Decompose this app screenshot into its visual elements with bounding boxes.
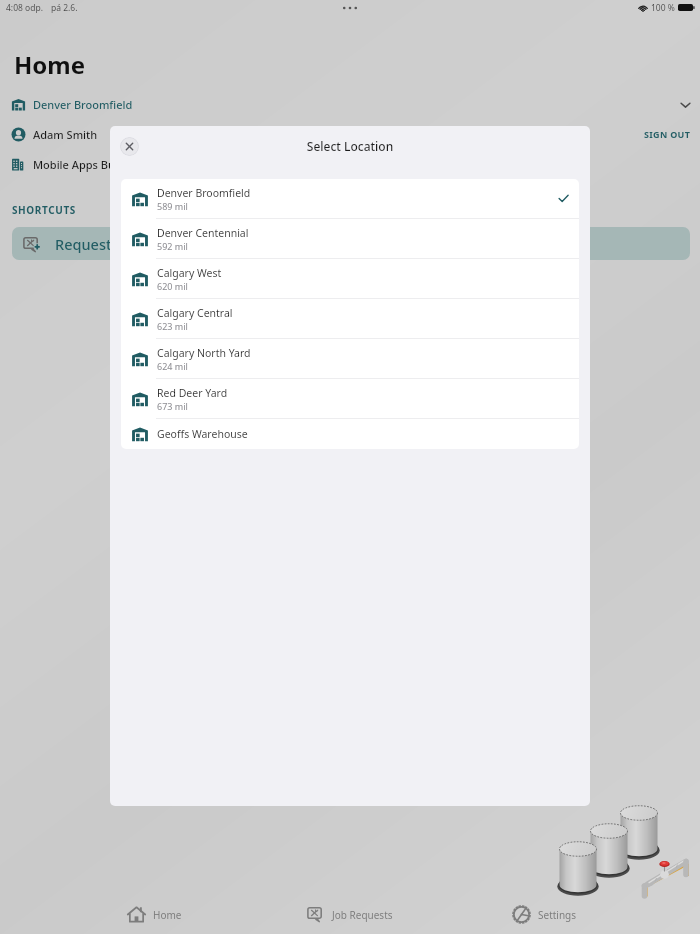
staticText: 623 mil — [157, 320, 188, 332]
staticText: Denver Broomfield — [157, 186, 251, 200]
staticText: 4:08 odp. — [6, 2, 43, 14]
staticText: Calgary West — [157, 266, 222, 280]
button[interactable]: Denver Broomfield — [11, 94, 691, 114]
staticText: Calgary North Yard — [157, 346, 251, 360]
button[interactable]: Home — [56, 894, 252, 934]
button[interactable]: Calgary West — [121, 259, 579, 299]
staticText: Denver Centennial — [157, 226, 249, 240]
button[interactable]: Red Deer Yard — [121, 379, 579, 419]
button[interactable]: Job Requests — [252, 894, 447, 934]
staticText: 592 mil — [157, 240, 188, 252]
staticText: 624 mil — [157, 360, 188, 372]
button[interactable]: Denver Broomfield — [121, 179, 579, 219]
staticText: Select Location — [110, 138, 590, 154]
staticText: Request — [55, 234, 112, 254]
staticText: 673 mil — [157, 400, 188, 412]
staticText: Calgary Central — [157, 306, 233, 320]
staticText: Home — [153, 908, 182, 922]
button[interactable]: Geoffs Warehouse — [121, 419, 579, 449]
staticText: SHORTCUTS — [12, 203, 76, 217]
button[interactable]: Calgary North Yard — [121, 339, 579, 379]
staticText: Denver Broomfield — [33, 97, 133, 112]
button[interactable]: SIGN OUT — [643, 126, 692, 142]
staticText: SIGN OUT — [644, 128, 691, 140]
staticText: Mobile Apps Buy — [33, 157, 121, 172]
staticText: 620 mil — [157, 280, 188, 292]
staticText: pá 2.6. — [51, 2, 78, 14]
staticText: Red Deer Yard — [157, 386, 228, 400]
staticText: Home — [14, 48, 86, 81]
button[interactable]: Request — [12, 227, 690, 260]
staticText: Settings — [538, 908, 577, 922]
button[interactable]: Denver Centennial — [121, 219, 579, 259]
staticText: Geoffs Warehouse — [157, 427, 248, 441]
button[interactable]: Settings — [447, 894, 642, 934]
staticText: 589 mil — [157, 200, 188, 212]
button[interactable]: Calgary Central — [121, 299, 579, 339]
staticText: Job Requests — [332, 908, 393, 922]
staticText: 100 % — [651, 2, 675, 14]
staticText: Adam Smith — [33, 127, 98, 142]
button[interactable]: Close — [120, 137, 139, 156]
